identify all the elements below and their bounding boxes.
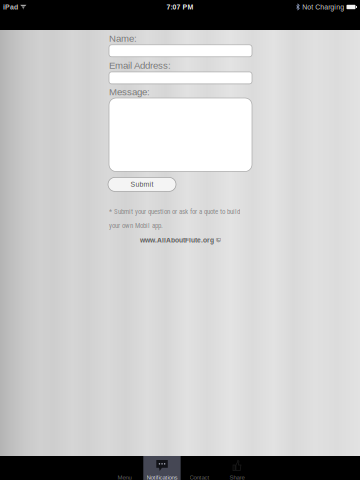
staticText: Email Address: <box>109 60 171 71</box>
staticText: Message: <box>109 86 150 97</box>
button[interactable]: Share <box>218 456 256 480</box>
staticText: 7:07 PM <box>166 3 193 11</box>
button[interactable] <box>109 72 252 84</box>
staticText: www.AllAboutFlute.org © <box>140 236 221 244</box>
staticText: Submit <box>130 180 153 188</box>
staticText: Name: <box>109 33 137 44</box>
staticText: * Submit your question or ask for a quot… <box>109 207 240 216</box>
button[interactable]: Submit <box>108 177 176 191</box>
staticText: Not Charging <box>302 3 344 11</box>
staticText: Contact <box>190 474 210 480</box>
button[interactable]: Menu <box>106 456 143 480</box>
button[interactable]: Notifications <box>143 456 181 480</box>
button[interactable]: Contact <box>181 456 218 480</box>
staticText: iPad <box>3 3 18 11</box>
staticText: Share <box>230 474 245 480</box>
button[interactable] <box>109 98 252 171</box>
staticText: Notifications <box>147 474 178 480</box>
button[interactable] <box>109 45 252 57</box>
staticText: your own Mobil app. <box>109 221 163 230</box>
staticText: Menu <box>117 474 131 480</box>
